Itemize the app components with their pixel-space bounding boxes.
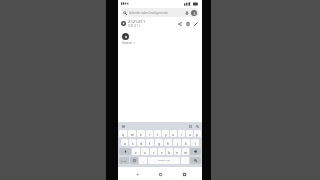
button[interactable]: t xyxy=(154,130,161,137)
staticText: c xyxy=(153,150,155,154)
staticText: o xyxy=(189,132,191,136)
staticText: 9:21:21 ↑ xyxy=(128,24,141,28)
button[interactable]: . xyxy=(181,157,189,164)
button[interactable]: Search key xyxy=(190,157,201,164)
button[interactable]: Share xyxy=(177,21,183,27)
staticText: l xyxy=(195,141,196,145)
button[interactable]: p xyxy=(194,130,201,137)
button[interactable]: s xyxy=(129,139,136,146)
staticText: m xyxy=(184,150,188,154)
button[interactable]: r xyxy=(146,130,153,137)
button[interactable]: Save xyxy=(185,21,191,27)
staticText: a xyxy=(124,141,126,145)
button[interactable]: Clipboard xyxy=(188,124,192,128)
staticText: u xyxy=(172,132,175,136)
button[interactable]: q xyxy=(119,130,127,137)
staticText: 21:21:21 ↑ xyxy=(128,19,146,24)
staticText: . xyxy=(185,159,186,163)
button[interactable]: , xyxy=(139,157,147,164)
staticText: p xyxy=(196,132,199,136)
button[interactable]: z xyxy=(132,148,140,155)
button[interactable]: Search xyxy=(195,124,199,128)
button[interactable]: Shift xyxy=(119,148,131,155)
staticText: ?123 xyxy=(121,159,127,162)
button[interactable]: Recent apps xyxy=(179,169,189,179)
staticText: b xyxy=(168,150,171,154)
button[interactable]: u xyxy=(170,130,177,137)
staticText: English (US) xyxy=(158,159,171,162)
button[interactable]: g xyxy=(155,139,163,146)
staticText: v xyxy=(161,150,163,154)
button[interactable]: h xyxy=(164,139,172,146)
staticText: n xyxy=(176,150,179,154)
button[interactable]: Open app xyxy=(122,33,129,40)
button[interactable]: m xyxy=(182,148,189,155)
button[interactable]: i xyxy=(178,130,185,137)
staticText: w xyxy=(131,132,134,136)
button[interactable]: linkedin sales lead generat xyxy=(121,8,199,17)
staticText: t xyxy=(157,132,159,136)
button[interactable]: Emoji xyxy=(130,157,138,164)
button[interactable]: a xyxy=(121,139,128,146)
button[interactable]: ?123 xyxy=(119,157,129,164)
staticText: e xyxy=(140,132,142,136)
staticText: q xyxy=(122,132,125,136)
staticText: d xyxy=(140,141,143,145)
staticText: f xyxy=(149,141,151,145)
button[interactable]: b xyxy=(166,148,173,155)
staticText: z xyxy=(135,150,137,154)
button[interactable]: Edit xyxy=(193,21,199,27)
button[interactable]: Back xyxy=(132,169,142,179)
button[interactable]: Keyboard menu xyxy=(121,124,125,128)
button[interactable]: Space xyxy=(148,157,180,164)
staticText: k xyxy=(185,141,187,145)
button[interactable]: d xyxy=(137,139,145,146)
button[interactable]: w xyxy=(128,130,136,137)
button[interactable]: e xyxy=(137,130,145,137)
staticText: y xyxy=(165,132,167,136)
staticText: r xyxy=(149,132,151,136)
staticText: h xyxy=(167,141,170,145)
button[interactable]: l xyxy=(191,139,199,146)
staticText: linkedin sales lead generat xyxy=(129,11,184,15)
staticText: g xyxy=(158,141,161,145)
button[interactable]: x xyxy=(141,148,149,155)
staticText: Browser ↑ xyxy=(122,41,136,45)
button[interactable]: Backspace xyxy=(190,148,201,155)
staticText: s xyxy=(132,141,134,145)
staticText: x xyxy=(144,150,146,154)
button[interactable]: f xyxy=(146,139,154,146)
button[interactable]: 21:21:21 ↑ xyxy=(118,18,202,29)
button[interactable]: j xyxy=(173,139,181,146)
button[interactable]: o xyxy=(186,130,193,137)
button[interactable]: y xyxy=(162,130,169,137)
staticText: i xyxy=(181,132,182,136)
button[interactable]: Voice search xyxy=(184,10,189,15)
button[interactable]: Home xyxy=(155,169,165,179)
button[interactable]: k xyxy=(182,139,190,146)
button[interactable]: c xyxy=(150,148,157,155)
staticText: , xyxy=(143,159,144,163)
button[interactable]: v xyxy=(158,148,165,155)
button[interactable]: n xyxy=(174,148,181,155)
button[interactable]: Account xyxy=(191,10,197,16)
staticText: j xyxy=(177,141,178,145)
